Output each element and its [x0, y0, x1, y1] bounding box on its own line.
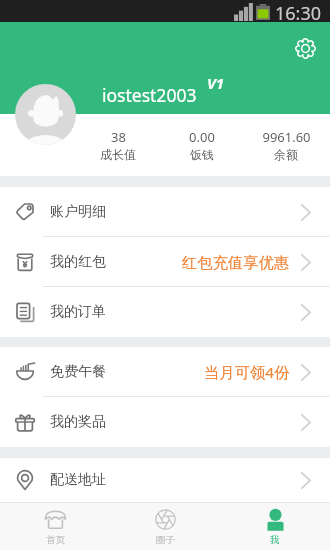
staticText: 我的奖品 — [50, 413, 106, 431]
staticText: 0.00 — [189, 128, 215, 146]
staticText: 我的订单 — [50, 303, 106, 321]
staticText: 圈子 — [156, 534, 175, 546]
button[interactable]: 我 — [220, 503, 330, 550]
staticText: 成长值 — [100, 147, 136, 162]
staticText: 16:30 — [275, 1, 322, 23]
staticText: 红包充值享优惠 — [182, 253, 290, 272]
button[interactable]: 9961.60 — [244, 128, 328, 162]
button[interactable]: 配送地址 — [0, 458, 330, 502]
button[interactable]: 免费午餐 — [0, 347, 330, 397]
staticText: 我 — [270, 534, 280, 546]
staticText: 余额 — [274, 147, 298, 162]
staticText: 账户明细 — [50, 203, 106, 221]
staticText: 饭钱 — [190, 147, 214, 162]
button[interactable]: 首页 — [0, 503, 110, 550]
staticText: 免费午餐 — [50, 363, 106, 381]
staticText: 配送地址 — [50, 471, 106, 489]
button[interactable]: 圈子 — [110, 503, 220, 550]
button[interactable]: 我的奖品 — [0, 397, 330, 447]
staticText: 9961.60 — [262, 128, 311, 146]
button[interactable]: 38 — [76, 128, 160, 162]
button[interactable]: 我的红包 — [0, 237, 330, 287]
staticText: 38 — [111, 128, 126, 146]
button[interactable]: Avatar — [15, 84, 76, 145]
button[interactable]: 0.00 — [160, 128, 244, 162]
staticText: 当月可领4份 — [204, 362, 290, 383]
button[interactable]: 我的订单 — [0, 287, 330, 337]
staticText: V1 — [207, 73, 225, 93]
staticText: 我的红包 — [50, 253, 106, 271]
staticText: iostest2003 — [102, 83, 197, 107]
button[interactable]: 账户明细 — [0, 187, 330, 237]
staticText: 首页 — [46, 534, 65, 546]
button[interactable]: Settings — [291, 34, 319, 62]
